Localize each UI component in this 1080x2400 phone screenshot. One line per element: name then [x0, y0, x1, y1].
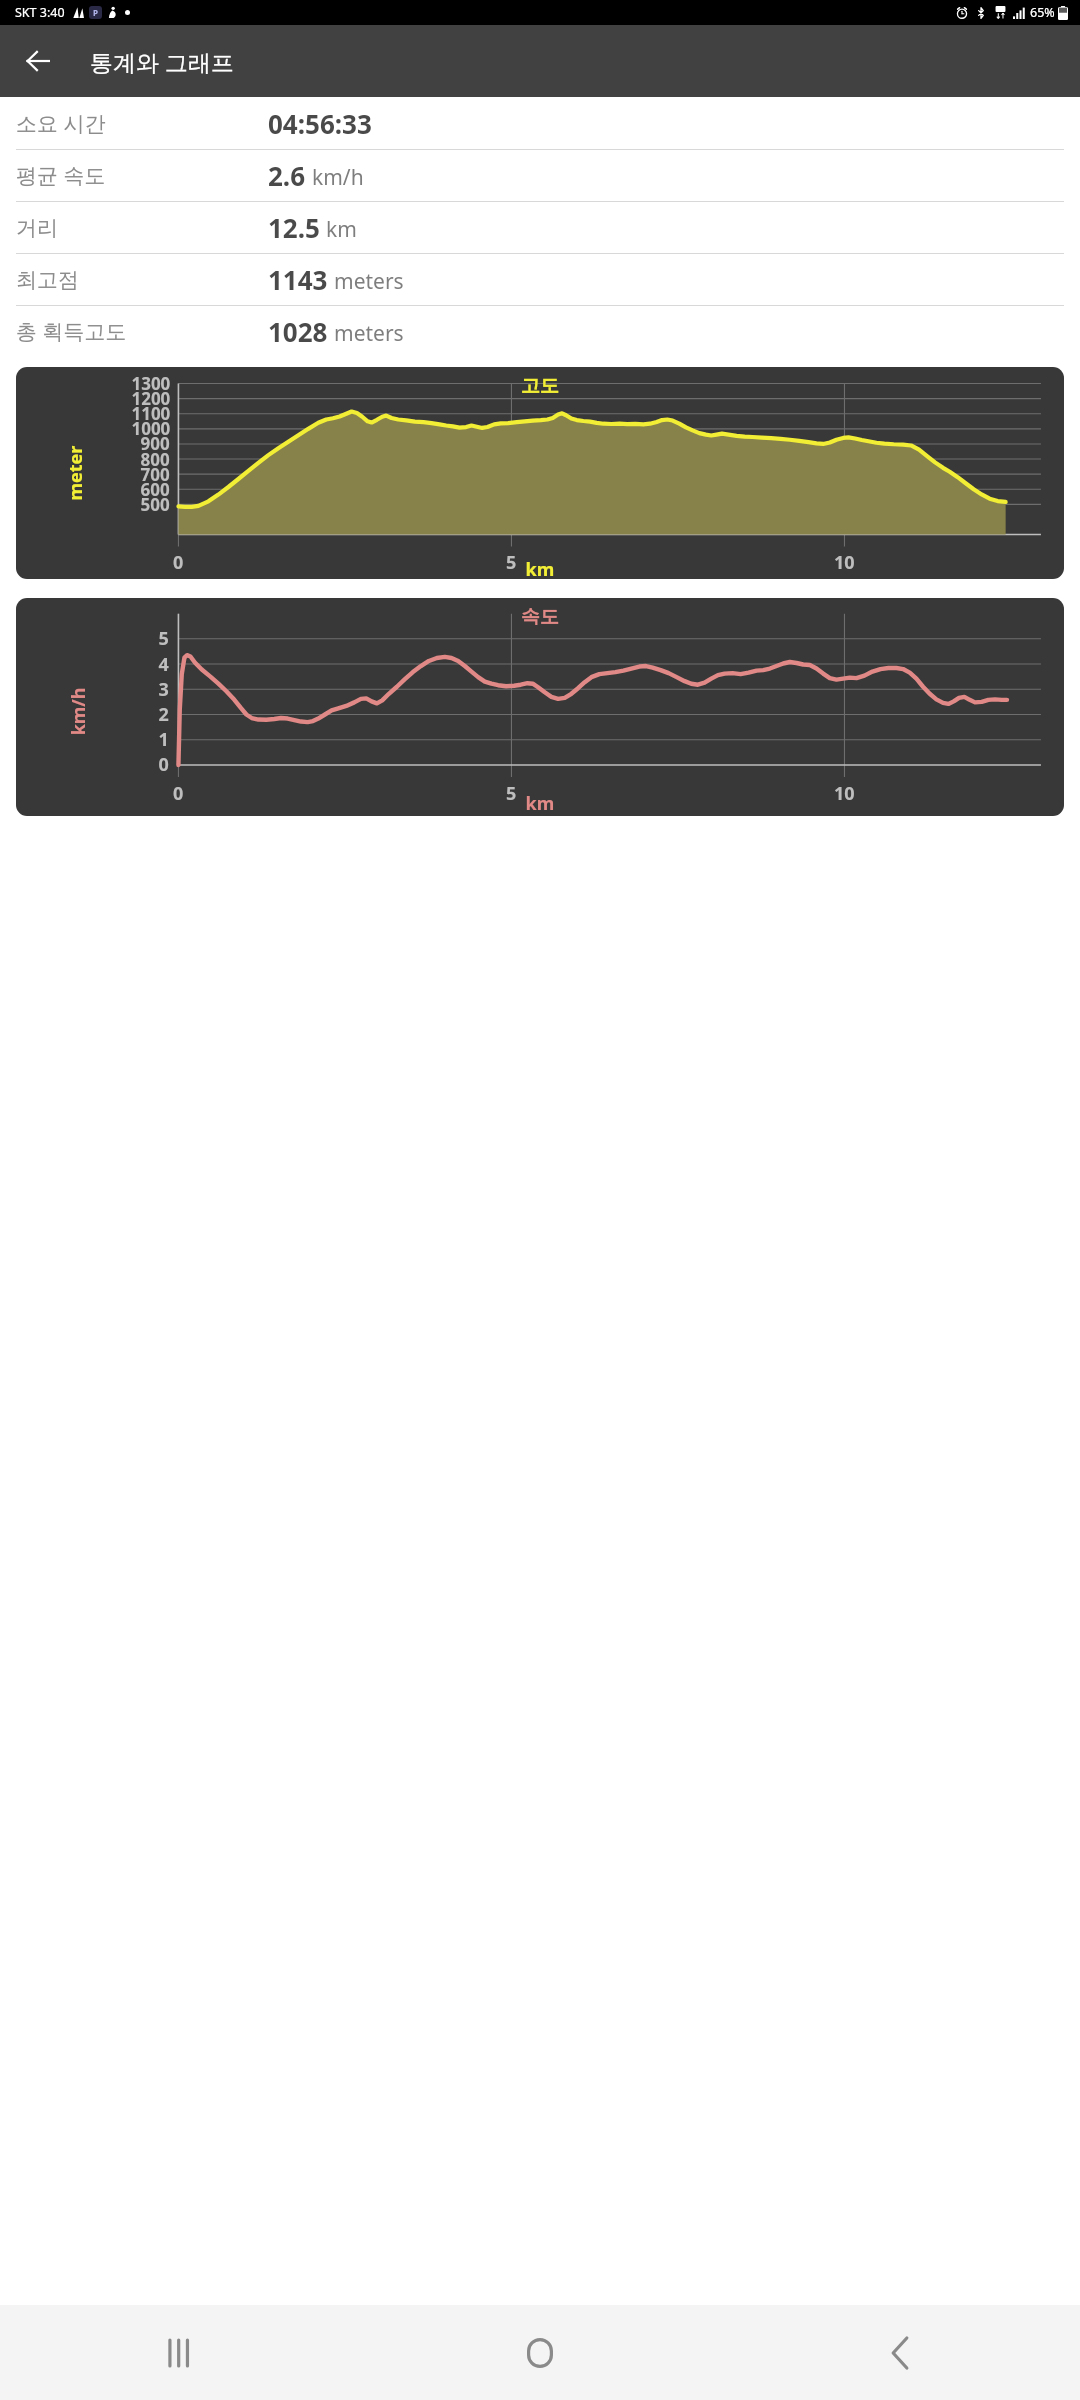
button[interactable]: 최고점	[16, 254, 1064, 305]
button[interactable]	[16, 367, 1064, 579]
staticText: 총 획득고도	[16, 317, 206, 346]
staticText: 65%	[1030, 4, 1055, 21]
staticText: 통계와 그래프	[90, 46, 234, 77]
staticText: 소요 시간	[16, 109, 206, 138]
staticText: P	[93, 7, 98, 18]
staticText: 최고점	[16, 267, 206, 293]
button[interactable]: 소요 시간	[16, 97, 1064, 149]
staticText: SKT 3:40	[15, 4, 65, 21]
button[interactable]: Home	[360, 2305, 720, 2400]
button[interactable]: 총 획득고도	[16, 306, 1064, 357]
button[interactable]	[16, 598, 1064, 816]
staticText: km	[326, 215, 357, 244]
staticText: 2.6	[268, 158, 306, 193]
button[interactable]: 평균 속도	[16, 150, 1064, 201]
staticText: meters	[334, 267, 404, 296]
staticText: 1028	[268, 314, 328, 349]
staticText: 1143	[268, 262, 328, 297]
staticText: km/h	[312, 163, 364, 192]
staticText: 평균 속도	[16, 161, 206, 190]
button[interactable]: Back	[720, 2305, 1080, 2400]
button[interactable]: Recent apps	[0, 2305, 360, 2400]
button[interactable]: 거리	[16, 202, 1064, 253]
button[interactable]: Back	[12, 35, 64, 87]
staticText: 거리	[16, 215, 206, 241]
staticText: 04:56:33	[268, 106, 372, 141]
staticText: meters	[334, 319, 404, 348]
staticText: 12.5	[268, 210, 320, 245]
